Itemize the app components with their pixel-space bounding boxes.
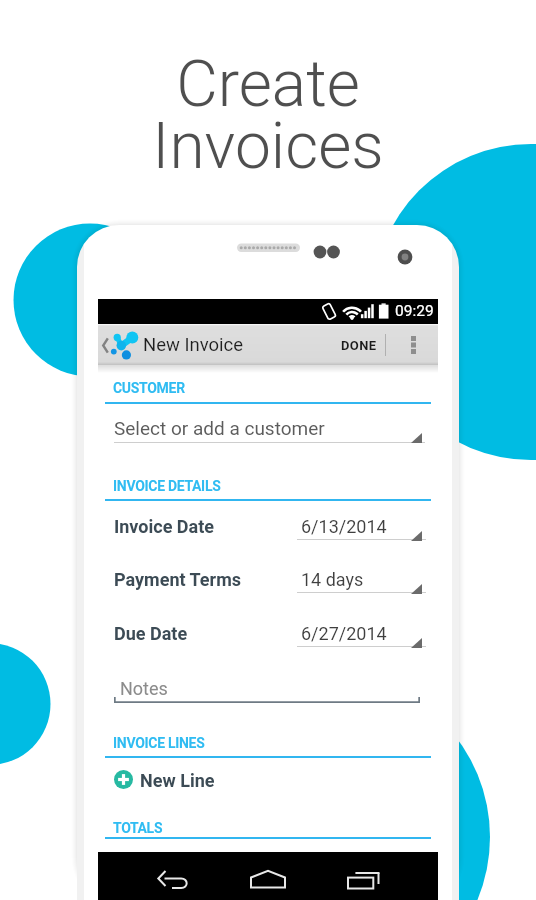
button[interactable]: Payment Terms <box>105 565 431 605</box>
button[interactable]: Back <box>144 859 200 897</box>
staticText: 09:29 <box>395 302 434 320</box>
button[interactable]: DONE <box>334 328 383 362</box>
staticText: INVOICE LINES <box>113 735 205 751</box>
staticText: TOTALS <box>113 820 163 836</box>
staticText: Invoices <box>0 109 536 184</box>
button[interactable]: Recent apps <box>333 859 389 897</box>
button[interactable]: Navigate up <box>98 327 112 363</box>
staticText: New Line <box>140 770 215 791</box>
button[interactable]: Select or add a customer <box>105 410 431 446</box>
staticText: Invoice Date <box>114 516 215 537</box>
staticText: CUSTOMER <box>113 380 185 396</box>
button[interactable]: Notes <box>110 673 426 709</box>
button[interactable]: New Line <box>105 769 431 795</box>
staticText: Due Date <box>114 623 188 644</box>
staticText: Select or add a customer <box>114 417 325 439</box>
button[interactable]: Due Date <box>105 619 431 659</box>
staticText: DONE <box>341 338 377 353</box>
staticText: Payment Terms <box>114 569 242 590</box>
staticText: 6/27/2014 <box>301 623 387 644</box>
staticText: INVOICE DETAILS <box>113 478 221 494</box>
staticText: Create <box>0 47 536 122</box>
staticText: Notes <box>120 678 168 699</box>
button[interactable]: Invoice Date <box>105 512 431 552</box>
staticText: 14 days <box>301 569 364 590</box>
staticText: 6/13/2014 <box>301 516 387 537</box>
staticText: New Invoice <box>143 334 244 356</box>
button[interactable]: Home <box>238 859 298 897</box>
button[interactable]: More options <box>398 328 428 362</box>
